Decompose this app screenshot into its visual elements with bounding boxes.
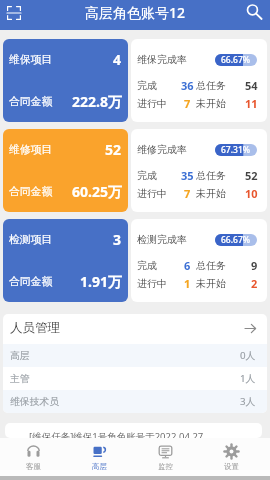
staticText: 未开始 — [196, 277, 226, 290]
staticText: 高层 — [10, 350, 30, 362]
staticText: 维保完成率 — [137, 53, 187, 66]
staticText: 高层 — [92, 462, 107, 471]
staticText: 1 — [184, 276, 191, 291]
staticText: 总任务 — [196, 259, 226, 272]
staticText: 1人 — [240, 372, 256, 385]
staticText: 11 — [245, 96, 258, 111]
staticText: 66.67% — [221, 234, 251, 246]
staticText: 7 — [184, 186, 191, 201]
staticText: 未开始 — [196, 97, 226, 110]
staticText: 合同金额 — [9, 275, 53, 289]
staticText: 进行中 — [137, 187, 167, 200]
button[interactable]: 维保项目 — [3, 39, 128, 122]
button[interactable]: 监控 — [132, 438, 198, 476]
staticText: 进行中 — [137, 97, 167, 110]
button[interactable]: 客服 — [0, 438, 66, 476]
button[interactable]: 维修项目 — [3, 129, 128, 212]
staticText: 4 — [113, 50, 122, 69]
staticText: 36 — [181, 78, 194, 93]
button[interactable]: 维修完成率 — [131, 129, 267, 212]
button[interactable]: 维保技术员 — [3, 390, 267, 413]
staticText: 52 — [105, 140, 122, 159]
staticText: 54 — [245, 78, 258, 93]
staticText: 3 — [113, 230, 122, 249]
staticText: 合同金额 — [9, 185, 53, 199]
staticText: 维修项目 — [9, 143, 53, 157]
staticText: 高层角色账号12 — [85, 3, 186, 22]
button[interactable]: 主管 — [3, 367, 267, 390]
staticText: [维保任务]维保1号角色账号于2022.04.27 — [29, 430, 204, 438]
button[interactable]: 高层 — [3, 344, 267, 367]
staticText: 完成 — [137, 79, 157, 92]
staticText: 检测完成率 — [137, 233, 187, 246]
staticText: 设置 — [224, 462, 239, 471]
button[interactable]: Search — [242, 0, 266, 24]
staticText: 9 — [251, 258, 258, 273]
staticText: 222.8万 — [72, 92, 122, 111]
button[interactable]: 维保完成率 — [131, 39, 267, 122]
staticText: 未开始 — [196, 187, 226, 200]
staticText: 7 — [184, 96, 191, 111]
staticText: 10 — [245, 186, 258, 201]
staticText: 维修完成率 — [137, 143, 187, 156]
staticText: 67.31% — [221, 144, 251, 156]
staticText: 60.25万 — [72, 182, 122, 201]
staticText: 客服 — [26, 462, 41, 471]
button[interactable]: 高层 — [66, 438, 132, 476]
staticText: 总任务 — [196, 169, 226, 182]
staticText: 监控 — [158, 462, 173, 471]
staticText: 检测项目 — [9, 233, 53, 247]
staticText: 维保技术员 — [10, 396, 59, 408]
button[interactable]: 检测项目 — [3, 219, 128, 302]
button[interactable]: 检测完成率 — [131, 219, 267, 302]
staticText: 35 — [181, 168, 194, 183]
staticText: 人员管理 — [10, 320, 61, 336]
staticText: 0人 — [240, 349, 256, 362]
staticText: 主管 — [10, 373, 30, 385]
staticText: 2 — [251, 276, 258, 291]
staticText: 3人 — [240, 395, 256, 408]
staticText: 1.91万 — [80, 272, 122, 291]
staticText: 52 — [245, 168, 258, 183]
button[interactable]: Scan code — [2, 1, 26, 25]
staticText: 总任务 — [196, 79, 226, 92]
staticText: 6 — [184, 258, 191, 273]
staticText: 完成 — [137, 169, 157, 182]
staticText: 维保项目 — [9, 53, 53, 67]
staticText: 完成 — [137, 259, 157, 272]
button[interactable]: [维保任务]维保1号角色账号于2022.04.27 — [5, 423, 262, 438]
button[interactable]: 设置 — [198, 438, 264, 476]
button[interactable]: 人员管理 — [3, 314, 267, 344]
staticText: 合同金额 — [9, 95, 53, 109]
staticText: 进行中 — [137, 277, 167, 290]
staticText: 66.67% — [221, 54, 251, 66]
